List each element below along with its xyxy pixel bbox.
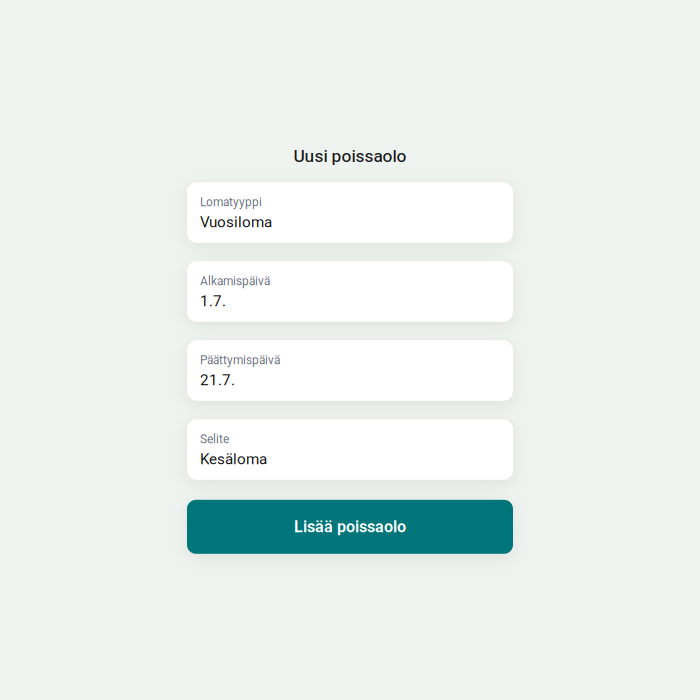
staticText: Vuosiloma xyxy=(200,213,272,231)
button[interactable]: Lomatyyppi xyxy=(187,182,513,243)
staticText: Alkamispäivä xyxy=(200,274,270,288)
staticText: Selite xyxy=(200,432,229,446)
button[interactable]: Alkamispäivä xyxy=(187,261,513,322)
button[interactable]: Päättymispäivä xyxy=(187,340,513,401)
staticText: 21.7. xyxy=(200,371,235,389)
staticText: Lisää poissaolo xyxy=(294,517,406,536)
staticText: Lomatyyppi xyxy=(200,195,262,209)
staticText: Päättymispäivä xyxy=(200,353,280,367)
staticText: Uusi poissaolo xyxy=(293,146,406,166)
button[interactable]: Selite xyxy=(187,419,513,480)
staticText: Kesäloma xyxy=(200,450,267,468)
button[interactable]: Lisää poissaolo xyxy=(187,500,513,554)
staticText: 1.7. xyxy=(200,292,226,310)
